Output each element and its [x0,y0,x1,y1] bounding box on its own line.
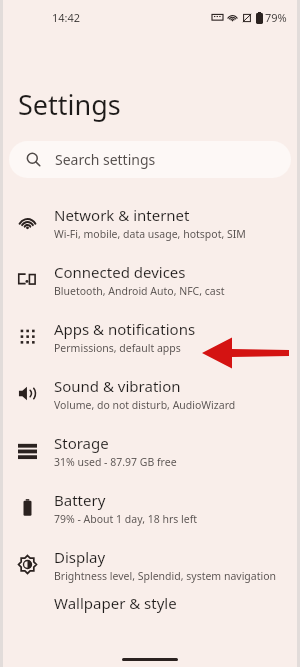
staticText: Battery [54,490,106,510]
staticText: Sound & vibration [54,376,181,396]
staticText: Network & internet [54,205,190,225]
staticText: Display [54,547,106,567]
button[interactable]: Connected devices [0,251,300,308]
staticText: 14:42 [52,10,81,25]
button[interactable]: Network & internet [0,194,300,251]
staticText: 79% [265,10,287,25]
button[interactable]: Search settings [9,141,291,178]
button[interactable]: Wallpaper & style [0,593,300,621]
staticText: Search settings [55,150,156,169]
staticText: 31% used - 87.97 GB free [54,455,177,469]
button[interactable]: Sound & vibration [0,365,300,422]
staticText: 79% - About 1 day, 18 hrs left [54,512,198,526]
button[interactable]: Display [0,536,300,593]
staticText: Wi-Fi, mobile, data usage, hotspot, SIM [54,227,246,241]
staticText: Storage [54,433,109,453]
staticText: Volume, do not disturb, AudioWizard [54,398,236,412]
staticText: Bluetooth, Android Auto, NFC, cast [54,284,225,298]
staticText: Apps & notifications [54,319,196,339]
button[interactable]: Battery [0,479,300,536]
staticText: Brightness level, Splendid, system navig… [54,569,277,583]
button[interactable]: Storage [0,422,300,479]
button[interactable]: Apps & notifications [0,308,300,365]
staticText: Connected devices [54,262,186,282]
staticText: Permissions, default apps [54,341,181,355]
staticText: Wallpaper & style [54,593,177,613]
staticText: Settings [18,86,121,123]
